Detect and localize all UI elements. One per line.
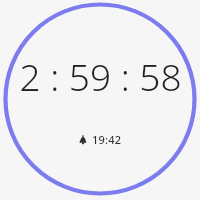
- other: Alarm: [78, 135, 88, 145]
- button[interactable]: Alarm: [74, 130, 126, 149]
- staticText: 2 : 59 : 58: [19, 51, 182, 101]
- button[interactable]: 2 : 59 : 58: [0, 0, 200, 200]
- staticText: 19:42: [92, 132, 122, 147]
